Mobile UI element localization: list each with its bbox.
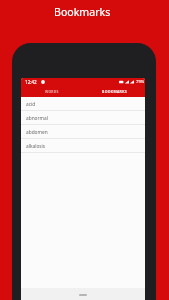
- button[interactable]: acid: [21, 97, 145, 111]
- staticText: abnormal: [26, 115, 48, 122]
- staticText: abdomen: [26, 129, 48, 136]
- staticText: 12:42: [25, 79, 37, 85]
- staticText: acid: [26, 101, 36, 108]
- other: Status icons: [119, 80, 134, 84]
- button[interactable]: abnormal: [21, 111, 145, 125]
- staticText: BOOKMARKS: [102, 89, 127, 94]
- staticText: alkalosis: [26, 143, 46, 150]
- staticText: 79%: [136, 79, 145, 85]
- button[interactable]: BOOKMARKS: [83, 86, 145, 97]
- button[interactable]: WORDS: [21, 86, 83, 97]
- button[interactable]: abdomen: [21, 125, 145, 139]
- staticText: WORDS: [45, 89, 59, 94]
- staticText: Bookmarks: [54, 5, 111, 19]
- button[interactable]: alkalosis: [21, 139, 145, 153]
